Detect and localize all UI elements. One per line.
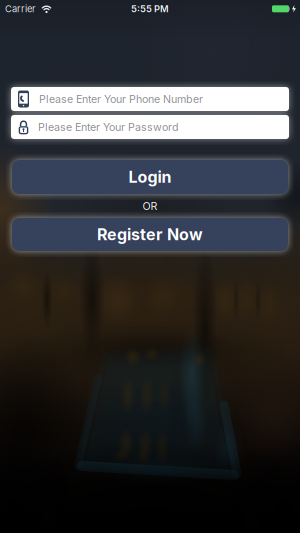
staticText: OR — [142, 200, 157, 212]
staticText: Register Now — [97, 225, 203, 244]
staticText: Please Enter Your Password — [38, 121, 179, 133]
staticText: Carrier — [5, 3, 36, 14]
staticText: Login — [128, 168, 171, 186]
button[interactable]: Login — [12, 160, 288, 194]
button[interactable]: Please Enter Your Phone Number — [11, 87, 289, 111]
button[interactable]: Please Enter Your Password — [11, 115, 289, 139]
staticText: Please Enter Your Phone Number — [39, 93, 203, 105]
staticText: 5:55 PM — [131, 3, 169, 14]
button[interactable]: Register Now — [12, 218, 288, 251]
